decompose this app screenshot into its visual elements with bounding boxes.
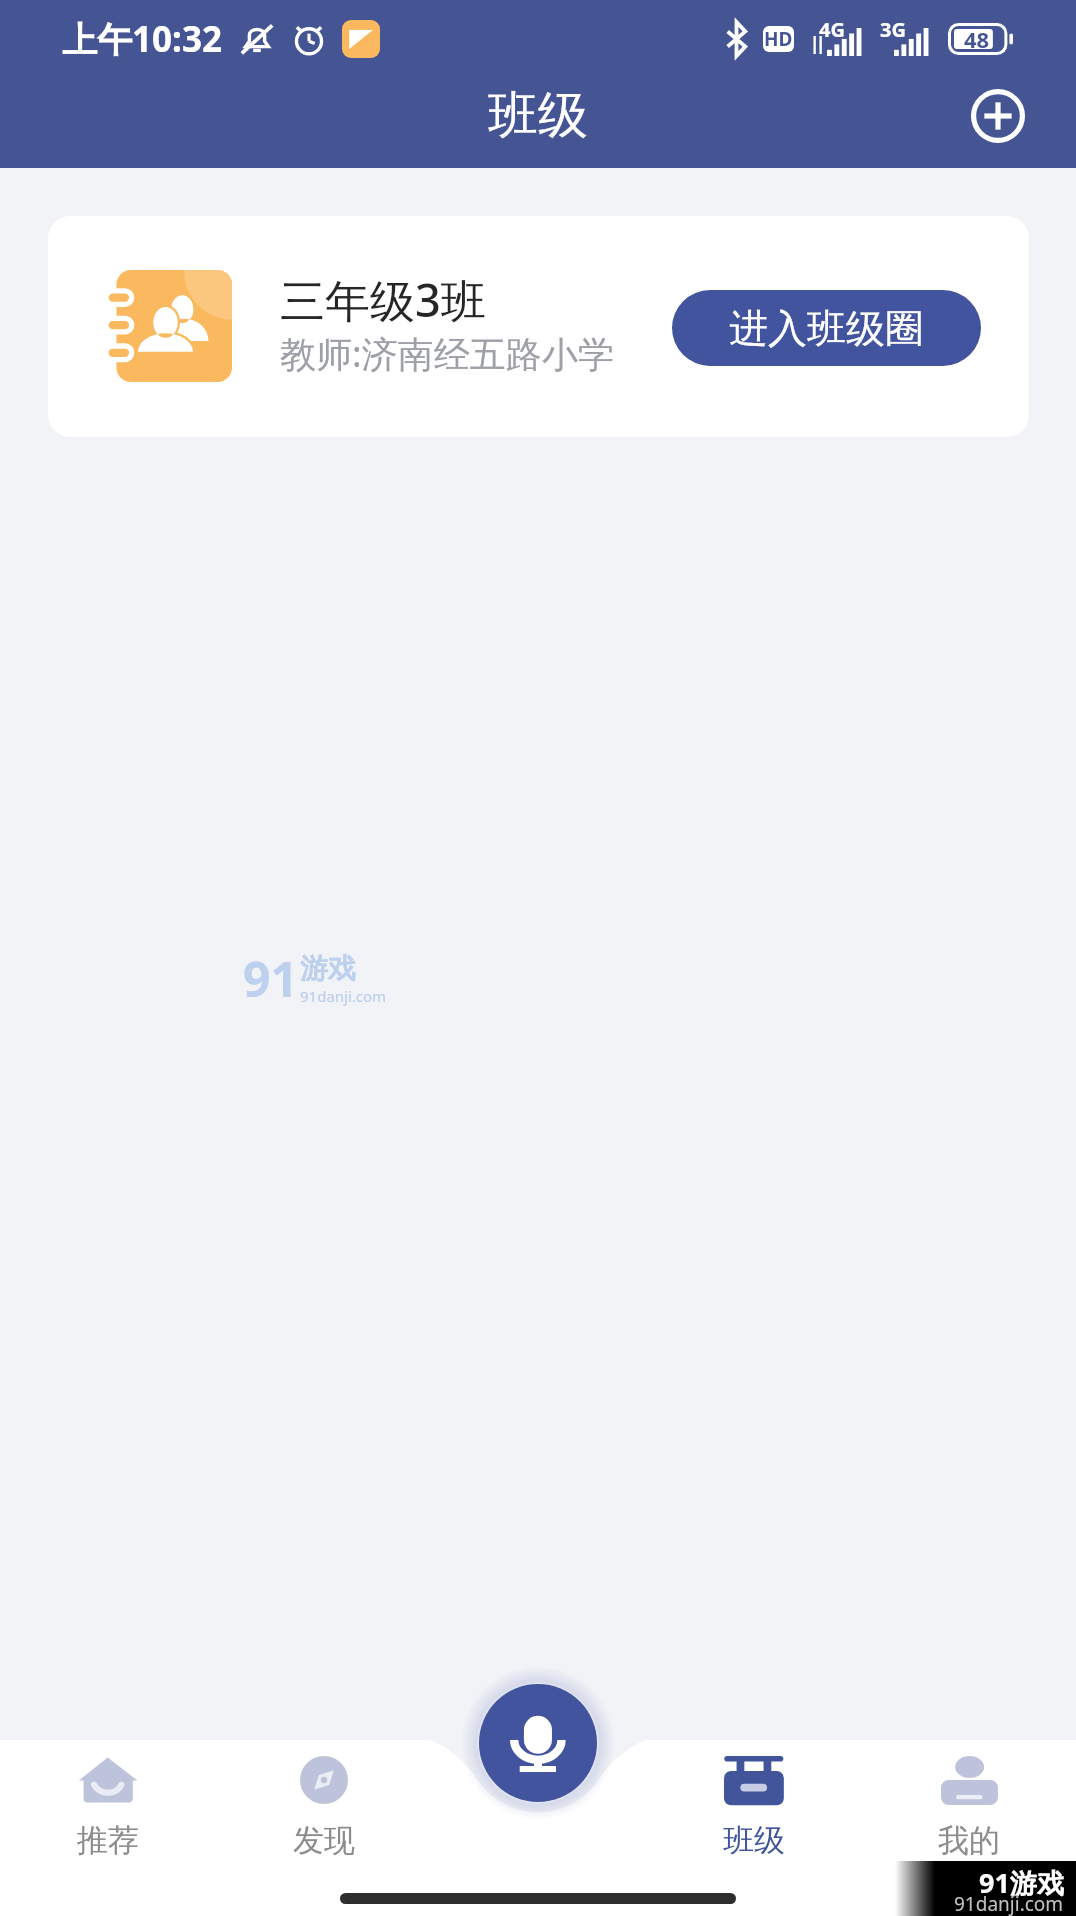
staticText: 推荐: [77, 1821, 139, 1860]
button[interactable]: 推荐: [0, 1740, 216, 1860]
staticText: 发现: [293, 1821, 355, 1860]
staticText: 班级: [723, 1821, 785, 1860]
staticText: 进入班级圈: [729, 304, 924, 353]
staticText: 91danji.com: [954, 1891, 1064, 1916]
button[interactable]: 发现: [216, 1740, 431, 1860]
staticText: 班级: [0, 84, 1076, 147]
staticText: 游戏: [300, 951, 356, 986]
button[interactable]: 我的: [861, 1740, 1076, 1860]
staticText: 上午10:32: [62, 15, 222, 63]
staticText: 91游戏: [979, 1864, 1064, 1901]
staticText: 48: [964, 24, 990, 54]
button[interactable]: Voice search: [479, 1684, 597, 1802]
staticText: 91danji.com: [300, 986, 387, 1006]
button[interactable]: 进入班级圈: [672, 290, 981, 366]
staticText: 教师:济南经五路小学: [280, 329, 614, 378]
staticText: 我的: [938, 1821, 1000, 1860]
staticText: 91: [243, 946, 298, 1011]
staticText: 三年级3班: [280, 269, 486, 330]
button[interactable]: 班级: [646, 1740, 861, 1860]
staticText: 3G: [880, 16, 906, 43]
staticText: 4G: [819, 16, 845, 43]
button[interactable]: Add class: [954, 72, 1042, 160]
button[interactable]: 三年级3班: [48, 216, 1029, 437]
staticText: HD: [764, 26, 793, 52]
